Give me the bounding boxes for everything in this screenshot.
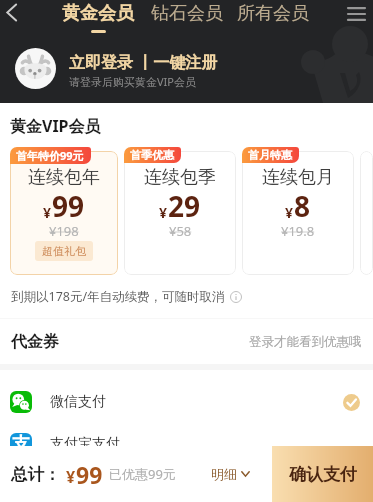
button[interactable]: 钻石会员 <box>151 0 223 33</box>
button[interactable]: 所有会员 <box>237 0 309 33</box>
staticText: 99 <box>52 187 85 225</box>
staticText: ¥ <box>66 466 76 488</box>
staticText: 所有会员 <box>237 2 309 25</box>
staticText: 微信支付 <box>50 393 106 411</box>
button[interactable]: Menu <box>340 0 373 28</box>
staticText: ¥19.8 <box>281 222 315 240</box>
staticText: 总计： <box>11 464 61 485</box>
button[interactable]: 黄金会员 <box>62 0 134 33</box>
button[interactable]: 微信支付 <box>0 381 373 423</box>
button[interactable]: 支 <box>0 423 373 465</box>
button[interactable]: 连续包年 <box>10 151 118 275</box>
staticText: 支付宝支付 <box>50 435 120 453</box>
staticText: 已优惠99元 <box>109 465 176 483</box>
staticText: 请登录后购买黄金VIP会员 <box>69 74 196 89</box>
staticText: 99 <box>76 459 103 490</box>
button[interactable] <box>360 151 373 275</box>
button[interactable]: 明细 <box>203 460 258 488</box>
staticText: ¥198 <box>49 222 79 240</box>
staticText: 首年特价99元 <box>16 148 84 163</box>
staticText: 连续包月 <box>262 166 334 189</box>
staticText: ¥ <box>43 203 52 222</box>
staticText: 登录才能看到优惠哦 <box>249 334 362 350</box>
button[interactable]: 确认支付 <box>272 446 373 502</box>
staticText: ¥ <box>285 203 294 222</box>
button[interactable]: Back <box>0 0 23 28</box>
button[interactable]: Avatar <box>15 48 56 89</box>
staticText: ¥ <box>159 203 168 222</box>
staticText: 明细 <box>211 466 237 482</box>
staticText: 确认支付 <box>289 464 357 485</box>
staticText: 超值礼包 <box>42 244 86 258</box>
button[interactable]: 连续包月 <box>242 151 354 275</box>
staticText: 到期以178元/年自动续费，可随时取消 <box>11 288 225 305</box>
staticText: 连续包年 <box>28 166 100 189</box>
staticText: 首季优惠 <box>130 148 174 162</box>
staticText: 黄金会员 <box>62 2 134 25</box>
staticText: 黄金VIP会员 <box>10 115 101 137</box>
staticText: ¥58 <box>169 222 192 240</box>
button[interactable]: 代金券 <box>11 319 362 364</box>
staticText: 钻石会员 <box>151 2 223 25</box>
button[interactable]: 连续包季 <box>124 151 236 275</box>
staticText: 首月特惠 <box>248 148 292 162</box>
staticText: 支 <box>12 433 30 455</box>
staticText: 代金券 <box>11 332 59 352</box>
staticText: 立即登录 丨一键注册 <box>69 51 218 73</box>
staticText: 连续包季 <box>144 166 216 189</box>
staticText: 29 <box>168 187 201 225</box>
staticText: 8 <box>294 187 311 225</box>
